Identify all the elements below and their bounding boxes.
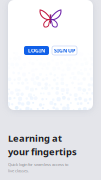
staticText: LOGIN — [28, 47, 45, 54]
button[interactable]: LOGIN — [24, 46, 49, 55]
staticText: live classes. — [8, 168, 29, 173]
staticText: your fingertips — [8, 145, 77, 158]
button[interactable]: SIGN UP — [52, 46, 77, 55]
staticText: SIGN UP — [54, 47, 75, 54]
staticText: Learning at — [8, 132, 62, 144]
staticText: Quick login for seamless access to — [8, 162, 68, 167]
